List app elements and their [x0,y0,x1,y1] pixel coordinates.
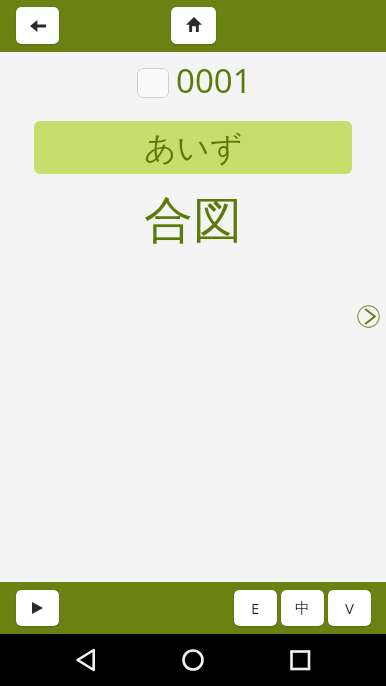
button[interactable]: English [234,590,277,626]
staticText: E [251,598,260,618]
button[interactable]: あいず [34,121,352,174]
button[interactable]: Next [357,305,380,328]
button[interactable]: Chinese [281,590,324,626]
staticText: あいず [144,128,243,168]
staticText: V [345,598,355,618]
button[interactable]: Select [137,68,169,98]
staticText: 合図 [0,190,386,252]
staticText: 中 [295,599,310,618]
button[interactable]: Play [16,590,59,626]
button[interactable]: Back [16,7,59,44]
staticText: 0001 [176,58,252,103]
button[interactable]: Home [171,7,216,44]
button[interactable]: Vietnamese [328,590,371,626]
